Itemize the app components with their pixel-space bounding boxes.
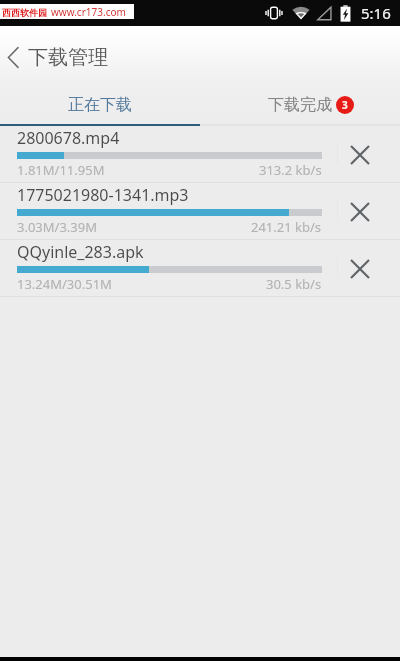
button[interactable]: 2800678.mp4 xyxy=(0,126,400,183)
staticText: www.cr173.com xyxy=(51,5,126,19)
button[interactable]: QQyinle_283.apk xyxy=(0,240,400,297)
staticText: 下载管理 xyxy=(28,45,108,70)
staticText: QQyinle_283.apk xyxy=(17,241,144,263)
button[interactable]: Cancel download xyxy=(338,240,400,297)
staticText: 313.2 kb/s xyxy=(259,161,322,179)
staticText: 3 xyxy=(342,98,348,112)
button[interactable]: 1775021980-1341.mp3 xyxy=(0,183,400,240)
button[interactable]: Cancel download xyxy=(338,183,400,240)
button[interactable]: 正在下载 xyxy=(0,82,200,124)
staticText: 1.81M/11.95M xyxy=(17,161,105,179)
staticText: 西西软件园 xyxy=(2,7,47,18)
staticText: 3.03M/3.39M xyxy=(17,218,98,236)
staticText: 下载完成 xyxy=(268,95,332,115)
staticText: 1775021980-1341.mp3 xyxy=(17,184,189,206)
button[interactable]: Back xyxy=(0,26,126,82)
staticText: 5:16 xyxy=(361,3,391,23)
staticText: 13.24M/30.51M xyxy=(17,275,112,293)
button[interactable]: 下载完成 xyxy=(200,82,400,124)
staticText: 241.21 kb/s xyxy=(251,218,322,236)
staticText: 30.5 kb/s xyxy=(266,275,322,293)
other: Back xyxy=(7,47,19,68)
button[interactable]: Cancel download xyxy=(338,126,400,183)
staticText: 2800678.mp4 xyxy=(17,127,120,149)
staticText: 正在下载 xyxy=(68,95,132,115)
